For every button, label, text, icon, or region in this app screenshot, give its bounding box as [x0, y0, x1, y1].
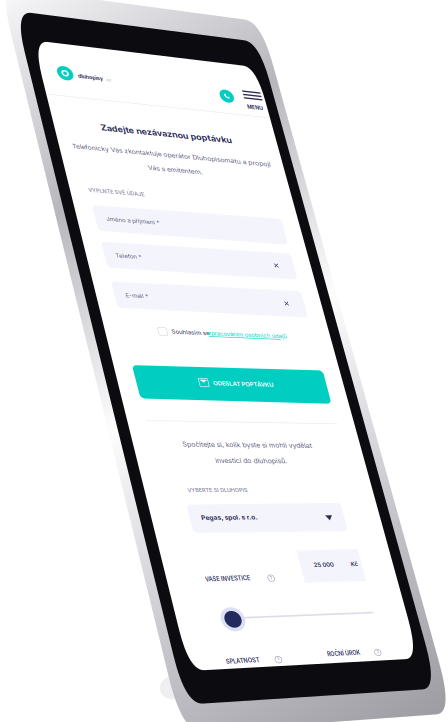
staticText: .cz	[105, 79, 122, 93]
staticText: 25 000	[313, 562, 377, 584]
button[interactable]: E-mail *	[0, 0, 448, 722]
button[interactable]: Call	[0, 0, 448, 722]
staticText: Zadejte nezávaznou poptávku	[172, 119, 448, 154]
staticText: investicí do dluhopisů.	[365, 456, 448, 482]
staticText: dluhopisy	[77, 75, 154, 94]
staticText: Spočítejte si, kolik byste si mohli vydě…	[271, 440, 448, 465]
staticText: ?	[281, 658, 288, 675]
staticText: ROČNÍ ÚROK	[326, 652, 432, 672]
staticText: Pegas, spol. s r.o.	[200, 514, 373, 538]
staticText: Kč	[350, 561, 373, 583]
button[interactable]: ODESLAT POPTÁVKU	[0, 0, 448, 722]
staticText: ?	[380, 650, 387, 668]
button[interactable]: dluhopisy.cz home	[0, 0, 448, 722]
button[interactable]: Pegas, spol. s r.o.	[0, 0, 448, 722]
staticText: zpracováním osobních údajů	[207, 330, 448, 353]
button[interactable]: Jméno a příjmení *	[0, 0, 448, 722]
staticText: VAŠE INVESTICE	[204, 577, 341, 597]
staticText: E-mail *	[124, 293, 194, 315]
staticText: ?	[274, 576, 281, 594]
staticText: Telefon *	[114, 253, 194, 276]
staticText: VYBERTE SI DLUHOPIS	[186, 488, 372, 508]
staticText: Jméno a příjmení *	[105, 216, 270, 239]
button[interactable]: Menu	[0, 0, 448, 722]
staticText: MENU	[254, 104, 307, 125]
staticText: ODESLAT POPTÁVKU	[212, 380, 403, 403]
button[interactable]: Telefon *	[0, 0, 448, 722]
button[interactable]: Souhlasím se	[0, 0, 448, 722]
staticText: Telefonicky Vás zkontaktuje operátor Dlu…	[85, 141, 448, 167]
staticText: Souhlasím se	[170, 328, 287, 351]
staticText: SPLATNOST	[225, 659, 326, 679]
staticText: VYPLŇTE SVÉ ÚDAJE	[87, 188, 261, 208]
